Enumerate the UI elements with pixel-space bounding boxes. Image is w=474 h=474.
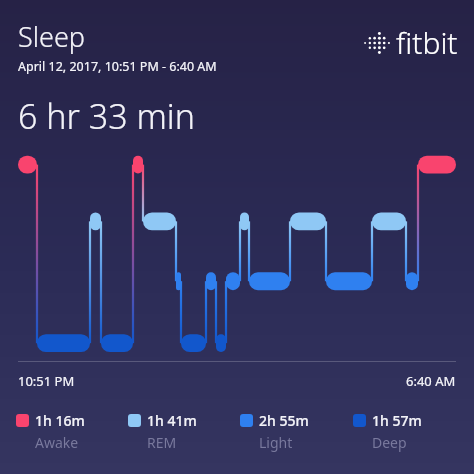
staticText: fitbit (396, 22, 458, 63)
staticText: 1h 57m (372, 411, 422, 430)
button[interactable]: 1h 41m (128, 411, 240, 452)
staticText: April 12, 2017, 10:51 PM - 6:40 AM (18, 58, 217, 75)
staticText: Light (259, 433, 293, 452)
button[interactable] (0, 151, 474, 361)
staticText: 10:51 PM (18, 372, 75, 390)
staticText: Sleep (18, 18, 85, 55)
staticText: 6 hr 33 min (18, 93, 195, 139)
button[interactable]: 1h 57m (353, 411, 466, 452)
staticText: 1h 16m (35, 411, 85, 430)
button[interactable]: Fitbit (359, 22, 458, 63)
staticText: REM (147, 433, 177, 452)
staticText: 2h 55m (259, 411, 309, 430)
button[interactable]: 2h 55m (240, 411, 353, 452)
staticText: Deep (372, 433, 407, 452)
staticText: 1h 41m (147, 411, 197, 430)
staticText: Awake (35, 433, 79, 452)
button[interactable]: 1h 16m (16, 411, 128, 452)
staticText: 6:40 AM (406, 372, 456, 390)
